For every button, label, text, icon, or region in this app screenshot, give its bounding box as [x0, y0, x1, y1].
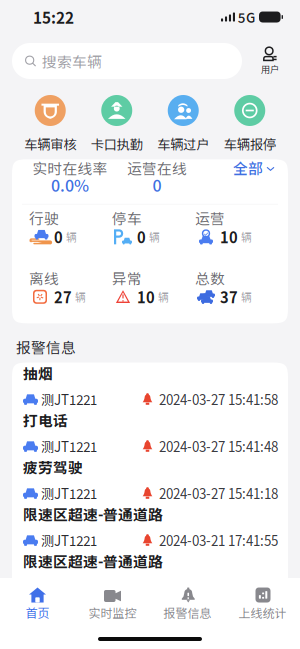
staticText: 0	[54, 226, 63, 247]
staticText: 辆	[241, 289, 252, 304]
staticText: 辆	[158, 289, 169, 304]
staticText: 实时监控	[88, 604, 136, 621]
button[interactable]: 限速区超速-普通道路	[12, 503, 288, 550]
staticText: 2024-03-21 17:41:55	[156, 577, 278, 597]
button[interactable]: 搜索车辆	[12, 43, 242, 79]
button[interactable]: 上线统计	[225, 587, 300, 618]
staticText: 27	[54, 286, 72, 307]
staticText: 10	[137, 286, 155, 307]
staticText: 0	[137, 226, 146, 247]
staticText: 运营	[195, 207, 225, 228]
staticText: 运营在线	[127, 157, 187, 178]
button[interactable]: 打电话	[12, 409, 288, 456]
staticText: 停车	[112, 207, 142, 228]
button[interactable]: 首页	[0, 587, 75, 618]
staticText: 实时在线率	[32, 157, 107, 178]
staticText: 2024-03-27 15:41:18	[156, 483, 278, 503]
staticText: 2024-03-21 17:41:55	[156, 530, 278, 550]
button[interactable]: 全部	[233, 160, 274, 176]
staticText: 0.0%	[51, 173, 89, 196]
staticText: 车辆审核	[24, 134, 76, 153]
button[interactable]: 用户	[253, 46, 287, 76]
staticText: 测JT1221	[41, 577, 97, 597]
staticText: 全部	[233, 157, 263, 178]
button[interactable]: 车辆报停	[216, 95, 283, 153]
button[interactable]: 抽烟	[12, 362, 288, 409]
staticText: 报警信息	[16, 336, 76, 357]
staticText: 行驶	[29, 207, 59, 228]
staticText: 37	[220, 286, 238, 307]
button[interactable]: 卡口执勤	[83, 95, 150, 153]
staticText: 报警信息	[163, 604, 211, 621]
staticText: 10	[220, 226, 238, 247]
staticText: 车辆报停	[224, 134, 276, 153]
staticText: 限速区超速-普通道路	[23, 503, 163, 524]
staticText: 辆	[75, 289, 86, 304]
staticText: 15:22	[33, 6, 74, 28]
staticText: 0	[152, 173, 161, 196]
staticText: 辆	[241, 229, 252, 244]
staticText: 卡口执勤	[91, 134, 143, 153]
button[interactable]: 限速区超速-普通道路	[12, 550, 288, 597]
staticText: 5G	[235, 7, 255, 27]
staticText: 测JT1221	[41, 530, 97, 550]
button[interactable]: 车辆过户	[150, 95, 216, 153]
staticText: 辆	[66, 229, 77, 244]
staticText: 辆	[149, 229, 160, 244]
staticText: 车辆过户	[157, 134, 209, 153]
staticText: 上线统计	[238, 604, 286, 621]
staticText: 测JT1221	[41, 436, 97, 456]
staticText: 总数	[195, 267, 225, 288]
staticText: 限速区超速-普通道路	[23, 550, 163, 571]
button[interactable]: 实时监控	[75, 587, 150, 618]
staticText: 首页	[25, 604, 49, 621]
staticText: 搜索车辆	[42, 50, 102, 72]
button[interactable]: 疲劳驾驶	[12, 456, 288, 503]
button[interactable]: 报警信息	[150, 587, 225, 618]
staticText: 测JT1221	[41, 483, 97, 503]
staticText: 疲劳驾驶	[23, 456, 83, 477]
staticText: 抽烟	[23, 362, 53, 383]
staticText: 用户	[261, 62, 279, 76]
staticText: 2024-03-27 15:41:48	[156, 436, 278, 456]
button[interactable]: 车辆审核	[17, 95, 83, 153]
staticText: 2024-03-27 15:41:58	[156, 389, 278, 409]
staticText: 离线	[29, 267, 59, 288]
staticText: 测JT1221	[41, 389, 97, 409]
staticText: 异常	[112, 267, 142, 288]
staticText: 打电话	[23, 409, 68, 430]
